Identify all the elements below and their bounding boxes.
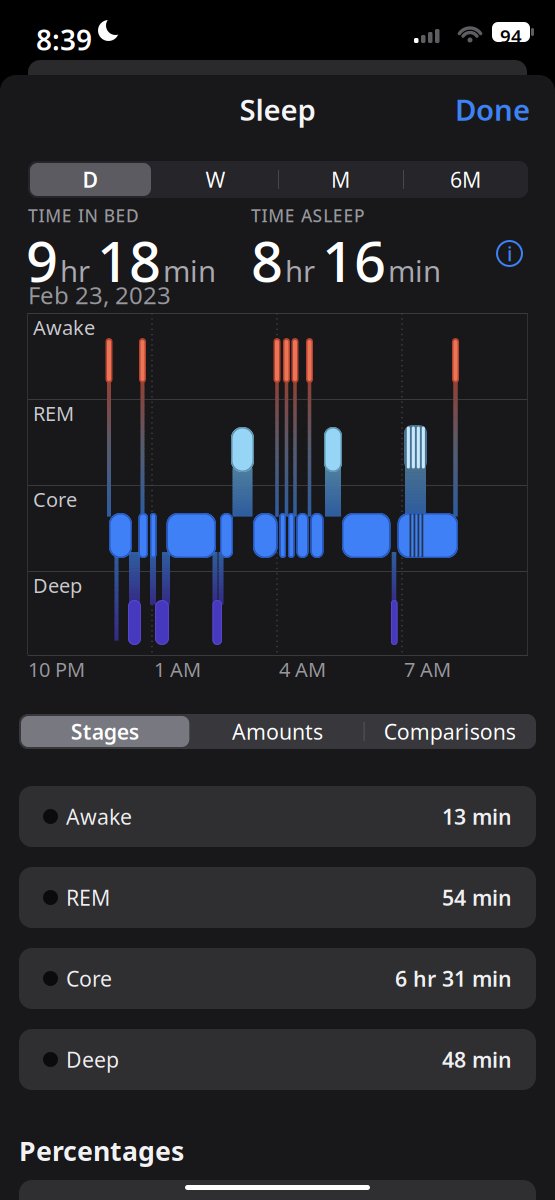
button[interactable]: D [28, 161, 153, 198]
staticText: 7 AM [404, 656, 451, 683]
button[interactable]: Done [455, 90, 530, 129]
staticText: REM [33, 400, 74, 427]
button[interactable]: Core [19, 948, 536, 1009]
staticText: TIME IN BED [28, 204, 139, 227]
staticText: Amounts [232, 717, 323, 746]
staticText: 1 AM [154, 656, 201, 683]
button[interactable]: Comparisons [364, 714, 536, 749]
staticText: Percentages [19, 1133, 184, 1168]
staticText: hr [285, 251, 315, 290]
button[interactable]: i [496, 240, 523, 267]
staticText: 6 hr 31 min [395, 964, 512, 993]
staticText: min [163, 251, 216, 290]
button[interactable]: Amounts [191, 714, 364, 749]
button[interactable] [30, 163, 151, 196]
staticText: Core [66, 964, 112, 993]
button[interactable]: W [153, 161, 278, 198]
staticText: 18 [97, 223, 161, 297]
staticText: M [331, 165, 350, 194]
staticText: 10 PM [28, 656, 85, 683]
staticText: W [205, 165, 225, 194]
staticText: 8:39 [36, 21, 92, 58]
staticText: Stages [71, 717, 140, 746]
staticText: Deep [33, 572, 82, 599]
staticText: 9 [26, 223, 58, 297]
button[interactable]: Deep [19, 1029, 536, 1090]
staticText: Feb 23, 2023 [28, 279, 171, 311]
staticText: D [82, 165, 98, 194]
staticText: i [507, 240, 512, 267]
staticText: 48 min [442, 1045, 512, 1074]
button[interactable]: Stages [19, 714, 191, 749]
button[interactable]: M [278, 161, 403, 198]
staticText: 8 [251, 223, 283, 297]
staticText: Comparisons [384, 717, 516, 746]
staticText: 54 min [442, 883, 512, 912]
staticText: 16 [322, 223, 386, 297]
staticText: Core [33, 486, 77, 513]
button[interactable]: Awake [19, 786, 536, 847]
button[interactable]: 6M [403, 161, 528, 198]
staticText: 4 AM [279, 656, 326, 683]
staticText: 13 min [442, 802, 512, 831]
staticText: REM [66, 883, 110, 912]
staticText: min [388, 251, 441, 290]
staticText: 6M [450, 165, 481, 194]
staticText: hr [60, 251, 90, 290]
staticText: Awake [33, 314, 95, 341]
staticText: Sleep [239, 90, 315, 129]
staticText: Deep [66, 1045, 119, 1074]
button[interactable] [21, 716, 189, 747]
staticText: 94 [500, 23, 522, 48]
button[interactable]: REM [19, 867, 536, 928]
staticText: Done [455, 90, 530, 129]
staticText: Awake [66, 802, 132, 831]
staticText: TIME ASLEEP [251, 204, 365, 227]
